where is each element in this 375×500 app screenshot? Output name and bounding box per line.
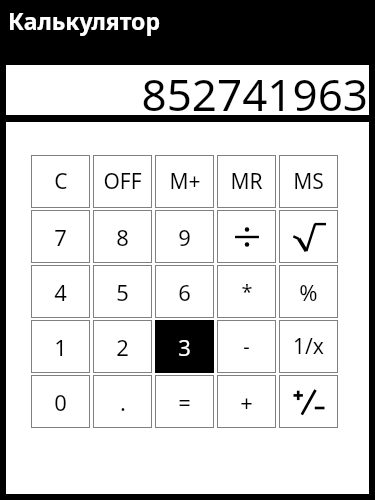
button[interactable]: 0 (31, 375, 90, 428)
button[interactable]: 1 (31, 320, 90, 373)
staticText: 0 (54, 387, 67, 417)
staticText: 2 (116, 332, 129, 362)
button[interactable]: 3 (155, 320, 214, 373)
button[interactable]: MS (279, 155, 338, 208)
button[interactable]: 6 (155, 265, 214, 318)
button[interactable]: 7 (31, 210, 90, 263)
button[interactable]: . (93, 375, 152, 428)
staticText: 7 (54, 222, 67, 252)
staticText: - (243, 333, 250, 360)
button[interactable]: 8 (93, 210, 152, 263)
button[interactable]: M+ (155, 155, 214, 208)
staticText: C (54, 167, 68, 196)
staticText: . (120, 387, 126, 417)
button[interactable]: = (155, 375, 214, 428)
staticText: + (240, 387, 253, 417)
staticText: = (178, 387, 191, 417)
button[interactable]: MR (217, 155, 276, 208)
staticText: OFF (103, 167, 142, 196)
staticText: % (299, 277, 318, 307)
staticText: M+ (169, 167, 201, 196)
button[interactable]: * (217, 265, 276, 318)
button[interactable]: 9 (155, 210, 214, 263)
staticText: 1/x (293, 332, 324, 361)
staticText: 852741963 (141, 64, 368, 116)
button[interactable]: - (217, 320, 276, 373)
staticText: 9 (178, 222, 191, 252)
staticText: 5 (116, 277, 129, 307)
button[interactable]: 2 (93, 320, 152, 373)
staticText: 8 (116, 222, 129, 252)
staticText: 1 (54, 332, 67, 362)
staticText: MS (293, 167, 324, 196)
button[interactable]: OFF (93, 155, 152, 208)
staticText: 4 (54, 277, 67, 307)
staticText: Калькулятор (8, 5, 161, 36)
button[interactable]: Display (5, 64, 370, 116)
staticText: MR (230, 167, 263, 196)
button[interactable]: 5 (93, 265, 152, 318)
button[interactable]: + (217, 375, 276, 428)
button[interactable]: 4 (31, 265, 90, 318)
staticText: * (241, 278, 253, 305)
button[interactable]: % (279, 265, 338, 318)
staticText: 3 (178, 332, 191, 362)
staticText: 6 (178, 277, 191, 307)
button[interactable]: Square root (279, 210, 338, 263)
button[interactable]: C (31, 155, 90, 208)
button[interactable]: Divide (217, 210, 276, 263)
button[interactable]: Plus minus (279, 375, 338, 428)
button[interactable]: 1/x (279, 320, 338, 373)
